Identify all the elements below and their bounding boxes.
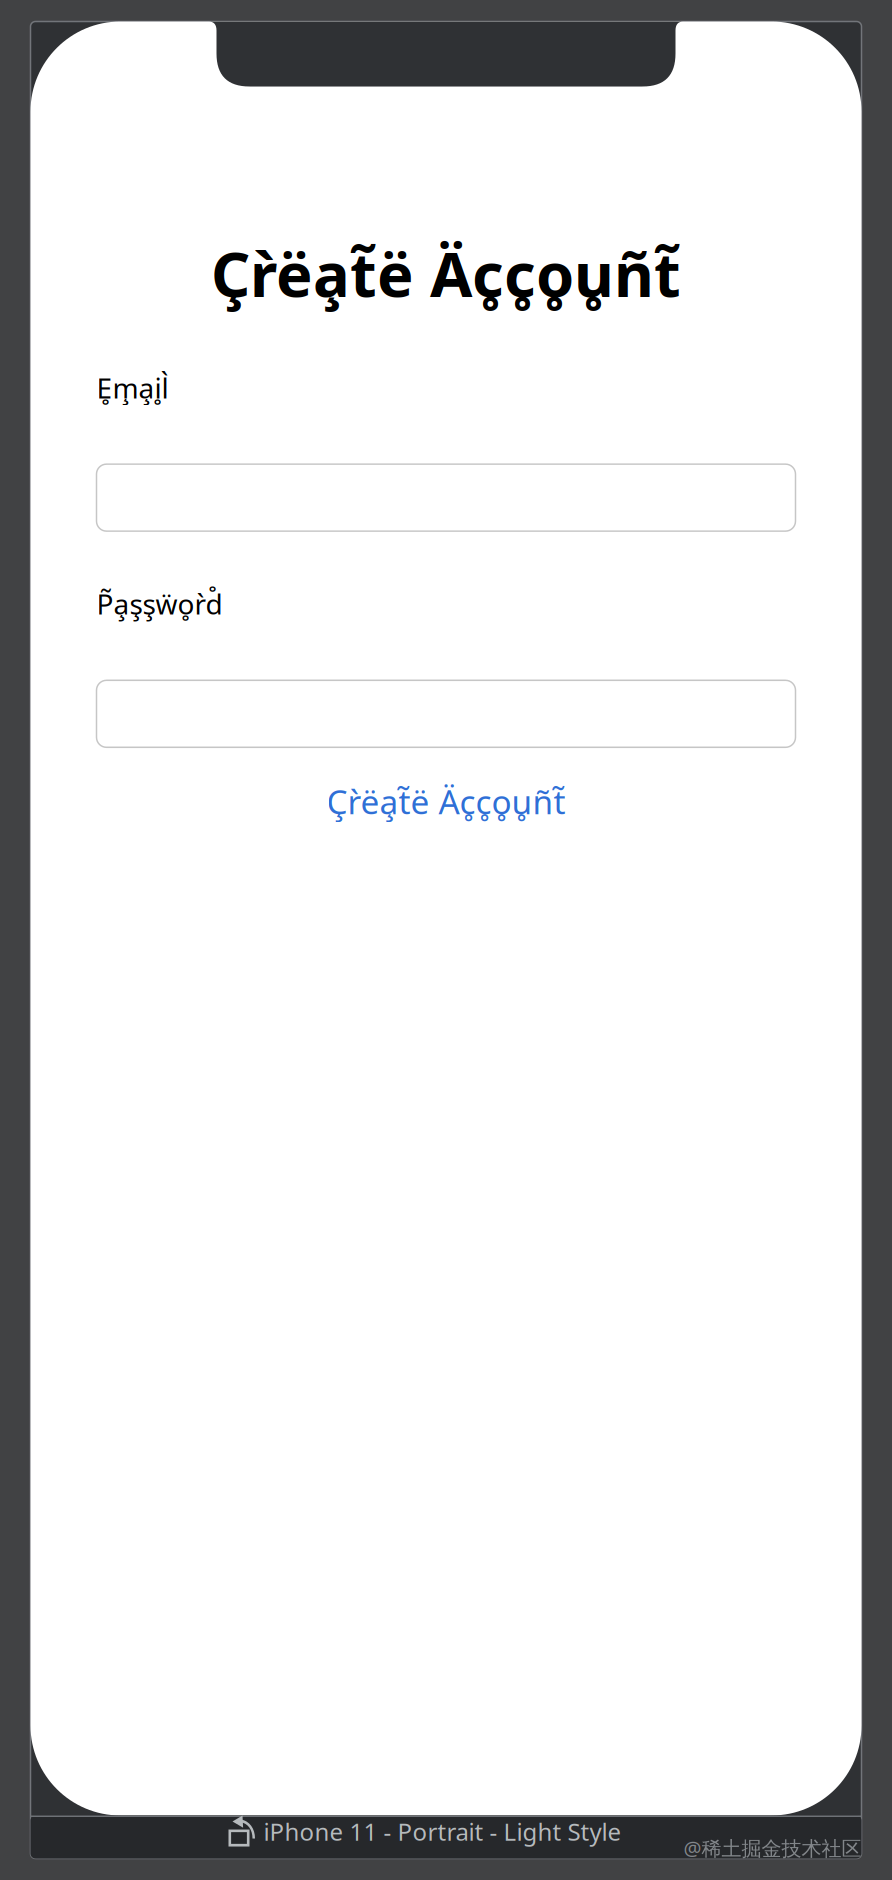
staticText: Çr̀ëa̧t̃ë Äc̥c̥o̥u̥ñt̃	[326, 779, 565, 823]
staticText: iPhone 11 - Portrait - Light Style	[263, 1816, 621, 1847]
button[interactable]	[96, 680, 795, 747]
button[interactable]: Çr̀ëa̧t̃ë Äc̥c̥o̥u̥ñt̃	[96, 773, 795, 829]
button[interactable]	[96, 464, 795, 531]
staticText: P̃a̧şşẅo̥r̀d̊	[96, 585, 222, 622]
staticText: E̥m̧a̧i̥l̀	[96, 369, 168, 406]
staticText: @稀土掘金技术社区	[683, 1835, 861, 1861]
staticText: Çr̀ëa̧t̃ë Äc̥c̥o̥u̥ñt̃	[211, 232, 681, 314]
